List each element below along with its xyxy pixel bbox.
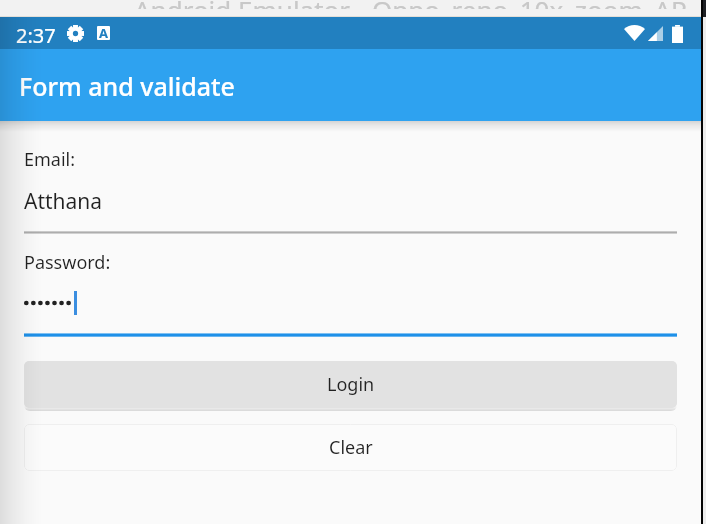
staticText: Clear — [329, 435, 373, 460]
staticText: Login — [327, 372, 375, 397]
other: Mobile signal — [648, 26, 663, 41]
other: Battery — [672, 25, 683, 43]
other: Settings — [67, 25, 84, 42]
staticText: A — [99, 26, 108, 38]
other: Accessibility — [97, 26, 110, 40]
staticText: Password: — [24, 250, 111, 275]
staticText: Android Emulator - Oppo_reno_10x_zoom_AP… — [134, 0, 705, 9]
button[interactable]: Login — [24, 361, 677, 408]
other: Wifi — [624, 25, 645, 41]
staticText: Email: — [24, 147, 76, 172]
button[interactable]: Clear — [24, 424, 677, 471]
staticText: Atthana — [24, 187, 103, 216]
staticText: Form and validate — [19, 69, 235, 103]
staticText: 2:37 — [16, 22, 56, 49]
